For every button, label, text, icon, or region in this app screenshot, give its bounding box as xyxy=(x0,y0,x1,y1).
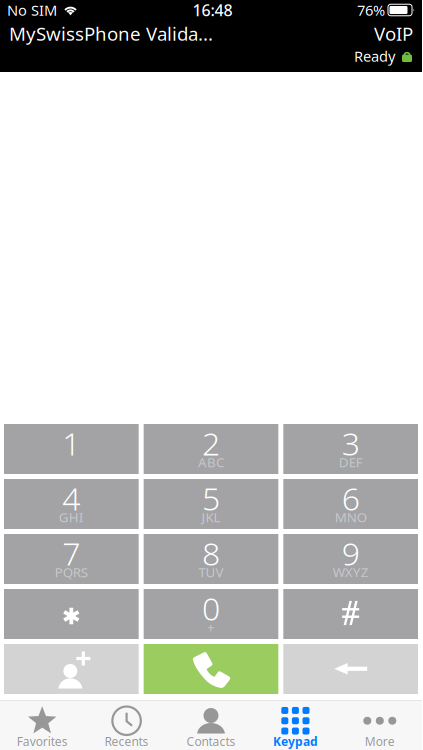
staticText: 1 xyxy=(62,422,80,464)
staticText: TUV xyxy=(198,563,223,581)
staticText: MySwissPhone Valida... xyxy=(9,21,213,46)
staticText xyxy=(70,453,73,471)
button[interactable]: 4 xyxy=(4,479,139,529)
button[interactable]: Favorites xyxy=(0,701,84,750)
button[interactable]: 0 xyxy=(144,589,278,639)
staticText: Ready xyxy=(354,46,395,66)
staticText: 7 xyxy=(62,532,80,574)
button[interactable]: 7 xyxy=(4,534,139,584)
staticText: WXYZ xyxy=(333,563,369,581)
staticText xyxy=(349,618,352,636)
staticText: 4 xyxy=(62,477,80,519)
button[interactable]: 9 xyxy=(283,534,418,584)
button[interactable]: 8 xyxy=(144,534,278,584)
staticText: 6 xyxy=(342,477,360,519)
button[interactable]: Contacts xyxy=(169,701,253,750)
button[interactable]: 3 xyxy=(283,424,418,474)
staticText: 16:48 xyxy=(192,0,232,21)
staticText: JKL xyxy=(201,508,220,526)
button[interactable]: Backspace xyxy=(283,644,418,694)
staticText: MNO xyxy=(335,508,367,526)
staticText: Favorites xyxy=(17,733,68,749)
button[interactable]: Add contact xyxy=(4,644,139,694)
staticText: No SIM xyxy=(7,0,57,20)
button[interactable]: Recents xyxy=(84,701,169,750)
staticText: GHI xyxy=(59,508,84,526)
button[interactable]: Keypad xyxy=(253,701,338,750)
staticText: VoIP xyxy=(374,21,413,46)
staticText: More xyxy=(365,733,395,749)
button[interactable]: More xyxy=(338,701,422,750)
staticText: 9 xyxy=(342,532,360,574)
staticText: 3 xyxy=(342,422,360,464)
staticText xyxy=(70,618,73,636)
button[interactable]: 2 xyxy=(144,424,278,474)
staticText: ABC xyxy=(198,453,224,471)
button[interactable]: Call xyxy=(144,644,278,694)
staticText: + xyxy=(207,618,215,636)
button[interactable] xyxy=(4,589,139,639)
staticText: 0 xyxy=(202,587,220,629)
staticText: DEF xyxy=(339,453,363,471)
staticText: PQRS xyxy=(55,563,88,581)
button[interactable]: 6 xyxy=(283,479,418,529)
staticText: 2 xyxy=(202,422,220,464)
staticText: 5 xyxy=(202,477,220,519)
staticText: Keypad xyxy=(273,733,318,749)
button[interactable]: 1 xyxy=(4,424,139,474)
staticText: Recents xyxy=(105,733,149,749)
button[interactable]: 5 xyxy=(144,479,278,529)
button[interactable] xyxy=(283,589,418,639)
staticText: 76% xyxy=(357,0,385,20)
staticText: Contacts xyxy=(186,733,235,749)
staticText: 8 xyxy=(202,532,220,574)
